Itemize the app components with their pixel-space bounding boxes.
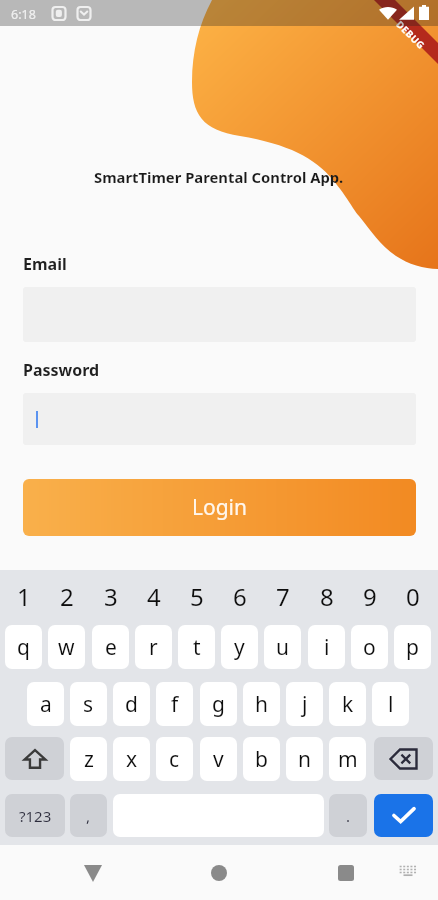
button[interactable]: 6 bbox=[221, 572, 258, 620]
staticText: Password bbox=[23, 359, 100, 381]
button[interactable]: Home bbox=[195, 849, 243, 897]
staticText: 6 bbox=[233, 580, 247, 613]
button[interactable]: 0 bbox=[394, 572, 431, 620]
button[interactable]: Recents bbox=[322, 849, 370, 897]
staticText: h bbox=[255, 690, 268, 719]
staticText: 4 bbox=[147, 580, 161, 613]
staticText: e bbox=[105, 633, 117, 662]
staticText: , bbox=[86, 806, 91, 826]
button[interactable]: o bbox=[351, 625, 388, 669]
button[interactable]: l bbox=[372, 682, 409, 726]
staticText: 7 bbox=[276, 580, 290, 613]
staticText: 1 bbox=[17, 580, 31, 613]
button[interactable]: w bbox=[48, 625, 85, 669]
button[interactable] bbox=[23, 393, 416, 445]
button[interactable]: i bbox=[308, 625, 345, 669]
staticText: . bbox=[346, 806, 351, 826]
button[interactable]: c bbox=[156, 737, 193, 781]
staticText: n bbox=[298, 745, 311, 774]
staticText: ?123 bbox=[19, 806, 52, 826]
button[interactable]: q bbox=[5, 625, 42, 669]
button[interactable]: Enter bbox=[374, 794, 433, 837]
button[interactable]: n bbox=[286, 737, 323, 781]
button[interactable]: h bbox=[243, 682, 280, 726]
staticText: SmartTimer Parental Control App. bbox=[94, 167, 344, 187]
button[interactable]: d bbox=[113, 682, 150, 726]
button[interactable]: , bbox=[70, 794, 107, 837]
button[interactable]: p bbox=[394, 625, 431, 669]
staticText: y bbox=[234, 633, 245, 662]
staticText: 3 bbox=[104, 580, 118, 613]
staticText: DEBUG bbox=[393, 18, 428, 52]
staticText: a bbox=[40, 690, 52, 719]
staticText: w bbox=[58, 633, 75, 662]
staticText: g bbox=[212, 690, 225, 719]
staticText: r bbox=[149, 633, 158, 662]
staticText: Email bbox=[23, 253, 67, 275]
button[interactable]: 7 bbox=[264, 572, 301, 620]
staticText: b bbox=[255, 745, 268, 774]
staticText: j bbox=[302, 690, 308, 719]
staticText: p bbox=[406, 633, 419, 662]
staticText: f bbox=[171, 690, 179, 719]
button[interactable]: g bbox=[200, 682, 237, 726]
staticText: q bbox=[17, 633, 30, 662]
button[interactable]: y bbox=[221, 625, 258, 669]
staticText: u bbox=[276, 633, 289, 662]
staticText: k bbox=[342, 690, 354, 719]
staticText: m bbox=[338, 745, 358, 774]
staticText: z bbox=[84, 745, 94, 774]
button[interactable]: s bbox=[70, 682, 107, 726]
staticText: 8 bbox=[320, 580, 334, 613]
button[interactable]: 4 bbox=[135, 572, 172, 620]
staticText: 5 bbox=[190, 580, 204, 613]
staticText: s bbox=[83, 690, 94, 719]
button[interactable]: m bbox=[329, 737, 366, 781]
staticText: 9 bbox=[363, 580, 377, 613]
button[interactable]: e bbox=[92, 625, 129, 669]
staticText: v bbox=[213, 745, 224, 774]
staticText: l bbox=[388, 690, 394, 719]
staticText: t bbox=[193, 633, 201, 662]
button[interactable]: v bbox=[200, 737, 237, 781]
button[interactable]: Login bbox=[23, 479, 416, 536]
staticText: i bbox=[324, 633, 330, 662]
button[interactable]: a bbox=[27, 682, 64, 726]
button[interactable]: ?123 bbox=[5, 794, 65, 837]
button[interactable]: 2 bbox=[48, 572, 85, 620]
button[interactable]: t bbox=[178, 625, 215, 669]
staticText: Login bbox=[192, 493, 248, 522]
button[interactable]: u bbox=[264, 625, 301, 669]
button[interactable]: k bbox=[329, 682, 366, 726]
staticText: 2 bbox=[60, 580, 74, 613]
button[interactable]: r bbox=[135, 625, 172, 669]
button[interactable]: Hide keyboard bbox=[388, 851, 428, 891]
button[interactable]: Shift bbox=[5, 737, 64, 780]
button[interactable]: Back bbox=[69, 849, 117, 897]
staticText: x bbox=[126, 745, 138, 774]
button[interactable]: . bbox=[329, 794, 367, 837]
staticText: c bbox=[169, 745, 180, 774]
button[interactable]: 1 bbox=[5, 572, 42, 620]
button[interactable]: b bbox=[243, 737, 280, 781]
staticText: 6:18 bbox=[11, 6, 36, 23]
staticText: o bbox=[363, 633, 376, 662]
button[interactable]: Backspace bbox=[374, 737, 433, 780]
button[interactable]: j bbox=[286, 682, 323, 726]
staticText: d bbox=[125, 690, 138, 719]
button[interactable]: 3 bbox=[92, 572, 129, 620]
button[interactable]: z bbox=[70, 737, 107, 781]
button[interactable]: 5 bbox=[178, 572, 215, 620]
button[interactable]: x bbox=[113, 737, 150, 781]
button[interactable]: 9 bbox=[351, 572, 388, 620]
staticText: 0 bbox=[406, 580, 420, 613]
button[interactable]: f bbox=[156, 682, 193, 726]
button[interactable]: 8 bbox=[308, 572, 345, 620]
